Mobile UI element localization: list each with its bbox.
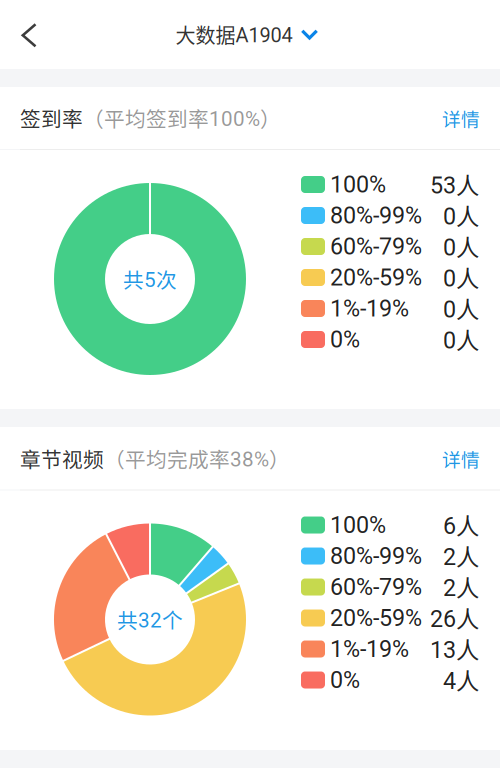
staticText: 60%-79% bbox=[330, 233, 422, 260]
staticText: 1%-19% bbox=[330, 635, 409, 663]
staticText: （平均完成率38%） bbox=[104, 443, 290, 473]
staticText: 0% bbox=[330, 326, 360, 353]
staticText: 0人 bbox=[443, 199, 479, 232]
staticText: 80%-99% bbox=[330, 542, 422, 570]
staticText: 大数据A1904 bbox=[175, 20, 292, 49]
staticText: 共32个 bbox=[117, 604, 183, 634]
staticText: 100% bbox=[330, 511, 386, 539]
staticText: 0人 bbox=[443, 261, 479, 294]
staticText: 详情 bbox=[442, 445, 480, 472]
staticText: （平均签到率100%） bbox=[83, 103, 281, 133]
staticText: 共5次 bbox=[123, 264, 177, 294]
staticText: 100% bbox=[330, 171, 386, 198]
staticText: 53人 bbox=[430, 168, 479, 201]
staticText: 26人 bbox=[430, 601, 479, 635]
button[interactable]: Back bbox=[0, 0, 56, 69]
staticText: 20%-59% bbox=[330, 604, 422, 632]
staticText: 0人 bbox=[443, 292, 479, 325]
staticText: 80%-99% bbox=[330, 202, 422, 229]
staticText: 60%-79% bbox=[330, 573, 422, 601]
staticText: 0人 bbox=[443, 230, 479, 263]
staticText: 2人 bbox=[443, 539, 479, 573]
staticText: 6人 bbox=[443, 508, 479, 542]
button[interactable]: 大数据A1904 bbox=[175, 10, 324, 59]
staticText: 20%-59% bbox=[330, 264, 422, 291]
staticText: 4人 bbox=[443, 663, 479, 697]
staticText: 详情 bbox=[442, 104, 480, 131]
staticText: 签到率 bbox=[20, 103, 83, 133]
staticText: 章节视频 bbox=[20, 443, 104, 473]
staticText: 1%-19% bbox=[330, 295, 409, 322]
staticText: 0人 bbox=[443, 323, 479, 356]
button[interactable]: 详情 bbox=[428, 437, 480, 480]
staticText: 0% bbox=[330, 666, 360, 694]
staticText: 2人 bbox=[443, 570, 479, 604]
button[interactable]: 详情 bbox=[428, 96, 480, 139]
staticText: 13人 bbox=[430, 632, 479, 666]
